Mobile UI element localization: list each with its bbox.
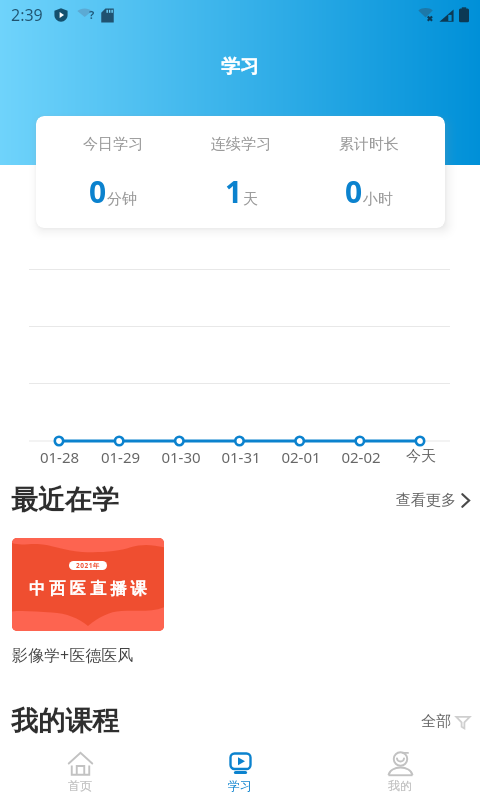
staticText: 02-02 xyxy=(331,447,391,467)
staticText: 01-29 xyxy=(90,447,151,467)
staticText: 01-31 xyxy=(211,447,271,467)
staticText: 01-28 xyxy=(29,447,90,467)
button[interactable]: 首页 xyxy=(0,745,160,799)
staticText: 学习 xyxy=(221,55,259,79)
staticText: 影像学+医德医风 xyxy=(12,644,134,666)
button[interactable]: 查看更多 xyxy=(384,485,480,516)
staticText: 小时 xyxy=(363,190,393,209)
staticText: 今天 xyxy=(391,447,451,466)
staticText: 0 xyxy=(345,171,363,212)
staticText: ? xyxy=(89,7,95,22)
button[interactable]: 学习 xyxy=(160,745,320,799)
staticText: 累计时长 xyxy=(339,135,399,154)
button[interactable]: 我的 xyxy=(320,745,480,799)
staticText: 01-30 xyxy=(151,447,211,467)
staticText: 查看更多 xyxy=(396,491,456,510)
button[interactable]: 中西医直播课 课程封面 xyxy=(12,538,164,631)
staticText: 我的课程 xyxy=(11,704,119,738)
staticText: 02-01 xyxy=(271,447,331,467)
staticText: 中西医直播课 xyxy=(29,579,151,599)
staticText: 2021年 xyxy=(76,561,100,570)
staticText: 1 xyxy=(225,171,243,212)
staticText: 学习 xyxy=(228,778,252,793)
staticText: 首页 xyxy=(68,778,92,793)
staticText: 2:39 xyxy=(11,4,43,26)
staticText: 0 xyxy=(89,171,107,212)
button[interactable]: 全部 xyxy=(409,706,480,737)
staticText: 今日学习 xyxy=(83,135,143,154)
staticText: 全部 xyxy=(421,712,451,731)
staticText: 连续学习 xyxy=(211,135,271,154)
staticText: 分钟 xyxy=(107,190,137,209)
staticText: 最近在学 xyxy=(11,483,119,517)
staticText: 天 xyxy=(243,190,258,209)
staticText: 我的 xyxy=(388,778,412,793)
